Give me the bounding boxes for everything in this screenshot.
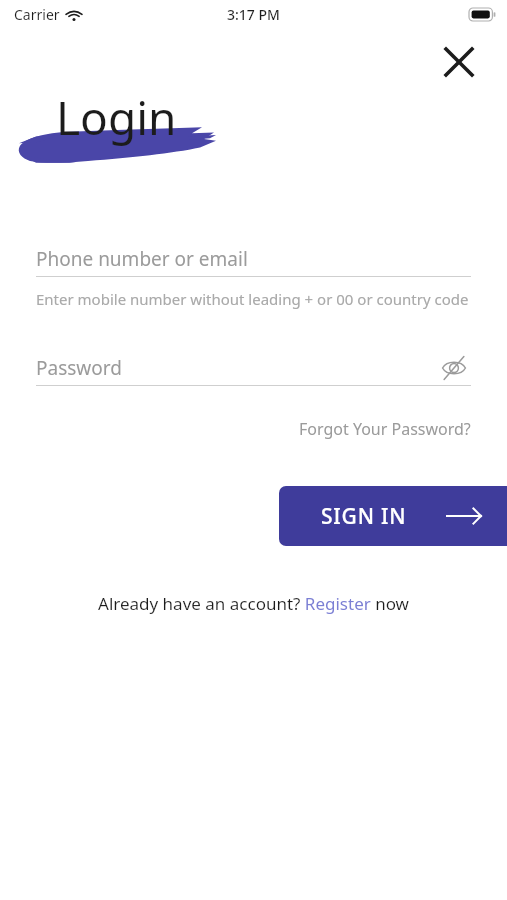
button[interactable]: SIGN IN [279,486,507,546]
staticText: Phone number or email [36,246,248,272]
button[interactable]: Close [435,38,483,86]
button[interactable]: Already have an account? Register now [90,588,417,619]
staticText: Enter mobile number without leading + or… [36,289,469,309]
staticText: 3:17 PM [227,5,280,24]
staticText: SIGN IN [321,502,407,531]
button[interactable]: Phone number or email [36,242,471,276]
staticText: Login [56,86,177,149]
staticText: Password [36,355,122,381]
staticText: Carrier [14,5,60,24]
button[interactable]: Forgot Your Password? [299,414,471,444]
button[interactable]: Show password [437,351,471,385]
button[interactable]: Password [36,351,437,385]
staticText: Forgot Your Password? [299,418,471,440]
staticText: Already have an account? Register now [98,592,409,615]
